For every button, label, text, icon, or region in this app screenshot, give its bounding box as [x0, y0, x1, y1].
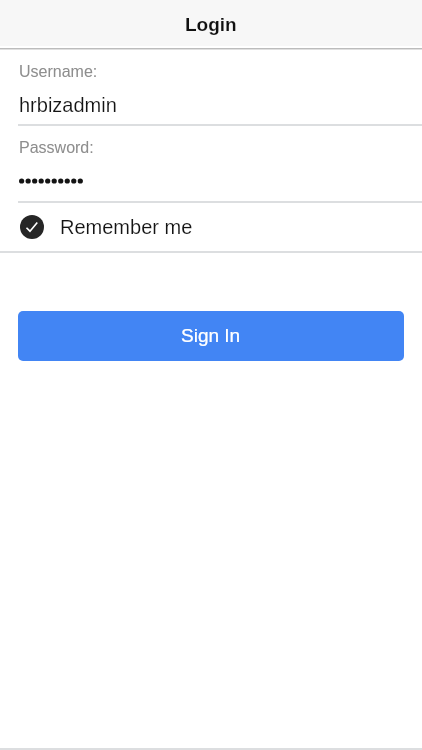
button[interactable]: Remember me checked — [0, 202, 422, 251]
staticText: Sign In — [181, 325, 241, 346]
staticText: Login — [185, 14, 237, 35]
staticText: Password: — [19, 139, 94, 157]
staticText: Username: — [19, 63, 98, 81]
button[interactable]: Sign In — [18, 311, 404, 361]
staticText: hrbizadmin — [19, 94, 117, 116]
staticText: Remember me — [60, 216, 193, 238]
other: Remember me checked — [20, 215, 44, 239]
